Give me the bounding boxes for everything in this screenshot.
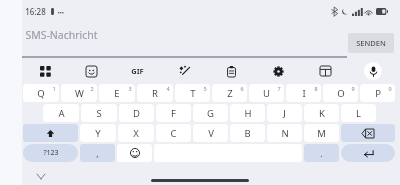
button[interactable]: H	[230, 104, 265, 122]
staticText: I	[302, 87, 306, 100]
staticText: P	[375, 87, 381, 100]
staticText: S	[96, 107, 102, 120]
button[interactable]: Hide keyboard	[34, 169, 48, 183]
staticText: 8	[314, 85, 318, 92]
staticText: D	[133, 107, 140, 120]
staticText: 16:28	[25, 6, 46, 17]
staticText: U	[263, 87, 270, 100]
staticText: X	[133, 127, 139, 140]
staticText: H	[244, 107, 252, 120]
staticText: N	[281, 127, 289, 140]
button[interactable]: Stickers	[68, 60, 114, 82]
button[interactable]: Symbols	[23, 144, 78, 162]
button[interactable]: J	[267, 104, 302, 122]
staticText: 2	[90, 85, 94, 92]
button[interactable]: G	[193, 104, 228, 122]
button[interactable]: N	[267, 124, 302, 142]
staticText: ,	[96, 147, 99, 159]
staticText: K	[319, 107, 325, 120]
button[interactable]: Emoji	[117, 144, 152, 162]
button[interactable]: C	[156, 124, 191, 142]
staticText: 1	[52, 85, 56, 92]
button[interactable]: W	[61, 84, 97, 102]
button[interactable]: Voice input	[364, 62, 382, 80]
button[interactable]: T	[175, 84, 210, 102]
staticText: G	[207, 107, 214, 120]
button[interactable]: M	[304, 124, 339, 142]
button[interactable]: Z	[212, 84, 247, 102]
staticText: L	[356, 107, 361, 120]
button[interactable]: Y	[80, 124, 116, 142]
button[interactable]: K	[304, 104, 339, 122]
staticText: T	[190, 87, 196, 100]
staticText: C	[170, 127, 177, 140]
staticText: Y	[95, 127, 101, 140]
button[interactable]: Clipboard	[208, 60, 255, 82]
button[interactable]: Settings	[255, 60, 302, 82]
button[interactable]: V	[193, 124, 228, 142]
button[interactable]: Comma	[80, 144, 115, 162]
button[interactable]: SENDEN	[348, 33, 394, 53]
staticText: R	[152, 87, 158, 100]
staticText: GIF	[131, 66, 144, 76]
button[interactable]: Q	[23, 84, 59, 102]
staticText: E	[114, 87, 120, 100]
button[interactable]: GIF	[114, 60, 161, 82]
staticText: B	[244, 127, 251, 140]
button[interactable]: Apps	[22, 60, 68, 82]
staticText: 9	[351, 85, 355, 92]
button[interactable]: Backspace	[341, 124, 395, 142]
staticText: V	[208, 127, 214, 140]
button[interactable]: X	[118, 124, 154, 142]
button[interactable]: L	[341, 104, 376, 122]
staticText: 7	[277, 85, 281, 92]
button[interactable]: Shift	[23, 124, 78, 142]
button[interactable]: P	[360, 84, 395, 102]
staticText: A	[58, 107, 65, 120]
button[interactable]: R	[137, 84, 173, 102]
button[interactable]: Magic	[161, 60, 208, 82]
staticText: 0	[388, 85, 392, 92]
staticText: 6	[240, 85, 244, 92]
button[interactable]: I	[286, 84, 321, 102]
button[interactable]: Period	[304, 144, 339, 162]
button[interactable]: F	[156, 104, 191, 122]
button[interactable]: Enter	[341, 144, 395, 162]
button[interactable]: A	[43, 104, 79, 122]
button[interactable]: O	[323, 84, 358, 102]
staticText: .	[320, 147, 323, 159]
staticText: O	[337, 87, 345, 100]
staticText: 3	[128, 85, 132, 92]
button[interactable]: S	[81, 104, 117, 122]
staticText: 5	[203, 85, 207, 92]
button[interactable]: U	[249, 84, 284, 102]
staticText: W	[75, 87, 84, 100]
staticText: J	[283, 107, 286, 120]
button[interactable]: E	[99, 84, 135, 102]
staticText: Q	[37, 87, 45, 100]
staticText: 4	[166, 85, 170, 92]
staticText: SMS-Nachricht	[25, 28, 98, 42]
button[interactable]: B	[230, 124, 265, 142]
button[interactable]: D	[119, 104, 154, 122]
staticText: Z	[227, 87, 233, 100]
staticText: M	[317, 127, 326, 140]
staticText: ?123	[43, 148, 59, 158]
staticText: F	[171, 107, 176, 120]
staticText: SENDEN	[356, 38, 386, 48]
button[interactable]: Translate	[302, 60, 349, 82]
